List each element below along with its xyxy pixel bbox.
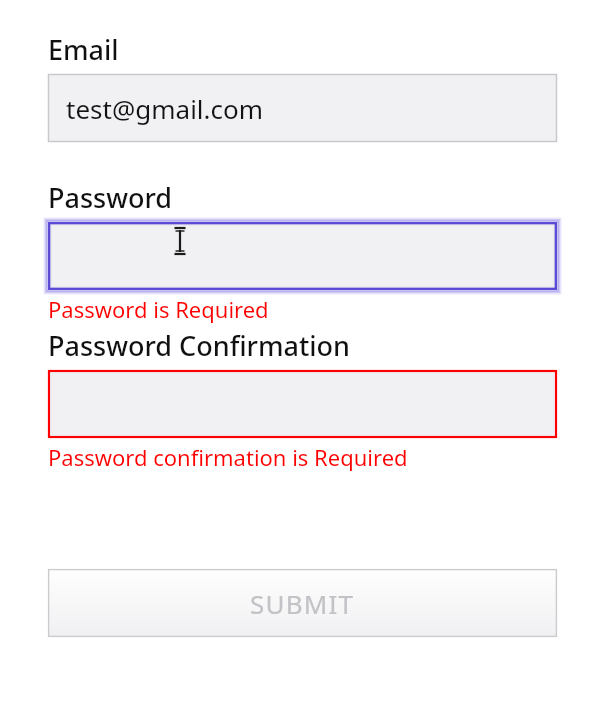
button[interactable]: Submit: [48, 569, 557, 637]
button[interactable]: Password Confirmation input: [48, 370, 557, 438]
button[interactable]: Password input: [48, 222, 557, 290]
button[interactable]: Email input, test@gmail.com: [48, 74, 557, 142]
